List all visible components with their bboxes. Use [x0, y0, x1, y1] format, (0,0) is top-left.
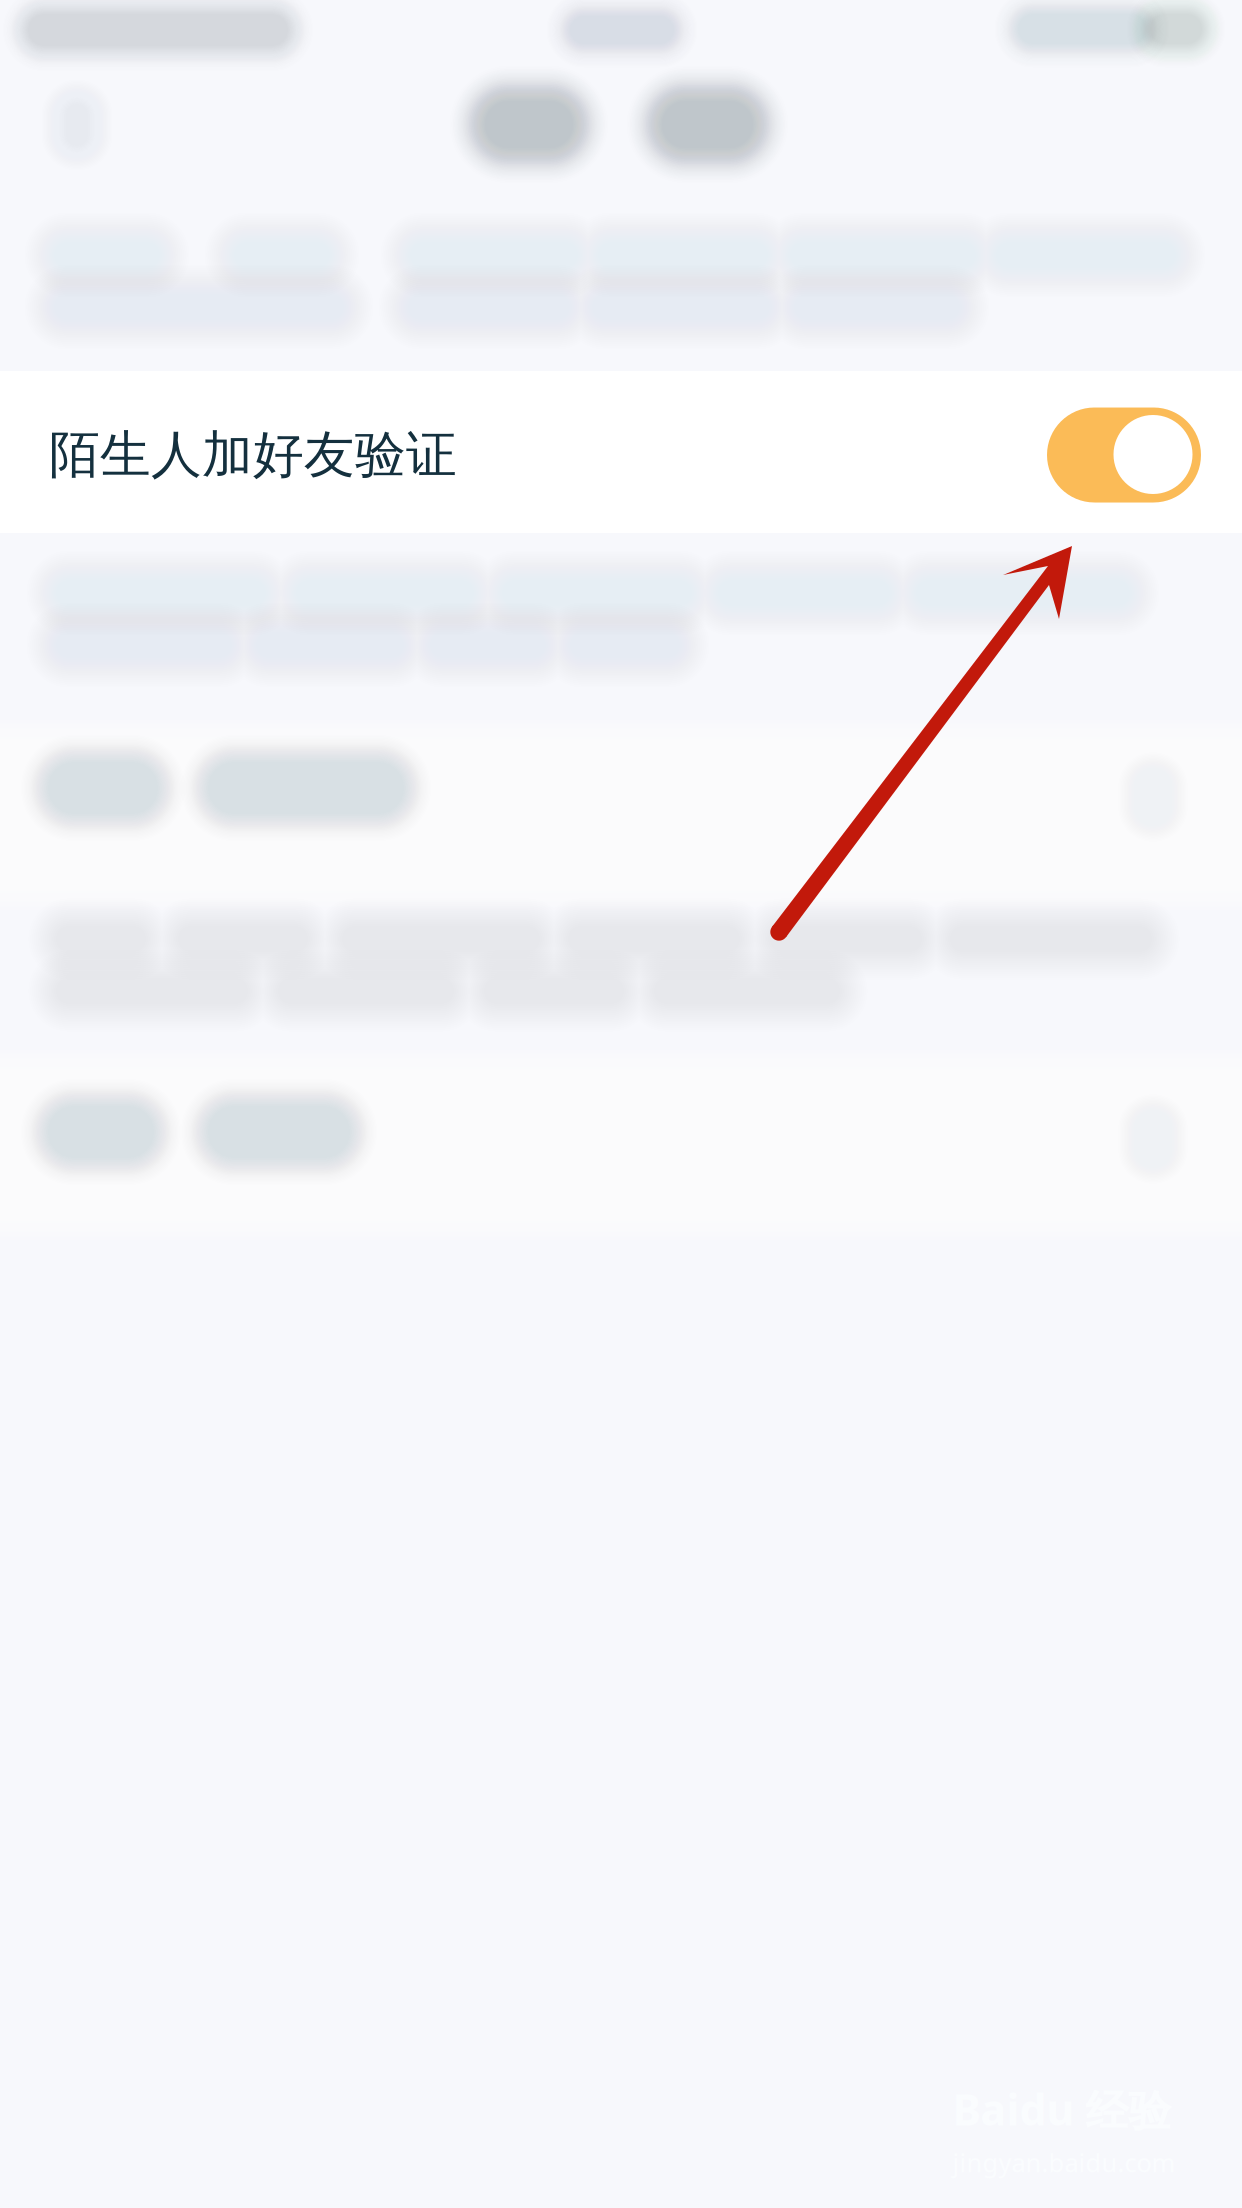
staticText: 陌生人加好友验证: [49, 424, 457, 486]
button[interactable]: 陌生人加好友验证: [0, 371, 1242, 533]
